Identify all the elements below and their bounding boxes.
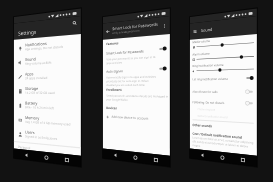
staticText: 14.2 GB of 32 GB used	[25, 91, 55, 95]
staticText: Sound	[25, 56, 37, 62]
staticText: Cast / Default notification sound	[192, 131, 242, 139]
staticText: Memory	[25, 115, 39, 121]
button[interactable]: Home	[128, 151, 142, 163]
button[interactable]: Media volume	[190, 35, 257, 49]
button[interactable]: Phone ringtone	[190, 106, 257, 113]
staticText: Enrollment	[106, 88, 122, 92]
staticText: Personal	[18, 144, 30, 150]
staticText: Media volume	[192, 39, 210, 44]
staticText: Saved passwords and device details are m…	[106, 94, 170, 103]
staticText: emily.jones@gmail.com	[112, 28, 140, 35]
button[interactable]: Home	[215, 151, 229, 163]
button[interactable]: Notifications	[14, 35, 81, 55]
button[interactable]: Back	[196, 149, 208, 160]
button[interactable]: Recents	[59, 153, 73, 165]
button[interactable]: Home	[39, 151, 53, 163]
staticText: App settings, Do not disturb	[25, 45, 63, 51]
staticText: Other sounds	[192, 122, 213, 127]
staticText: 24 apps installed	[25, 76, 48, 80]
button[interactable]: Memory	[14, 112, 81, 130]
staticText: Add new device to account	[111, 115, 148, 121]
staticText: Notifications	[25, 41, 47, 47]
button[interactable]: Users	[14, 126, 81, 146]
staticText: Ring/notification volume	[192, 63, 224, 68]
button[interactable]: Back	[105, 27, 111, 36]
staticText: Let ring/notification volume	[192, 77, 245, 81]
button[interactable]: Also vibrate for calls	[190, 88, 257, 95]
button[interactable]: Back	[20, 149, 32, 160]
staticText: Lorem ipsum dolor sit amet, consectetur …	[192, 135, 257, 154]
button[interactable]: Battery	[14, 97, 81, 114]
button[interactable]: Auto sign-in	[103, 67, 170, 87]
staticText: Smart Lock for Passwords	[106, 48, 144, 55]
staticText: Avg 1.4 GB of 4 GB memory used	[25, 120, 70, 126]
staticText: Auto sign-in	[106, 68, 124, 74]
button[interactable]: Recents	[235, 153, 249, 165]
staticText: Smart Lock for Passwords	[112, 21, 158, 31]
staticText: Automatically sign in to apps and websit…	[106, 74, 156, 87]
button[interactable]: Smart Lock for Passwords	[103, 47, 170, 65]
button[interactable]: Alarm volume	[190, 49, 257, 61]
button[interactable]: Search	[70, 18, 78, 26]
staticText: Signed in as Emily Jones	[25, 134, 57, 141]
button[interactable]: Add new device to account	[103, 113, 170, 123]
button[interactable]: Ring/notification volume	[190, 61, 257, 73]
button[interactable]: Menu	[192, 27, 198, 36]
button[interactable]: Back	[109, 149, 121, 160]
staticText: Default notification sound	[198, 114, 254, 121]
staticText: Following: Do not disturb	[192, 100, 245, 106]
staticText: Apps	[25, 71, 34, 76]
button[interactable]: Recents	[148, 153, 162, 165]
staticText: Battery	[25, 100, 38, 106]
button[interactable]: Storage	[14, 83, 81, 99]
button[interactable]: Let ring/notification volume	[190, 74, 257, 82]
staticText: Users	[25, 129, 35, 135]
staticText: Save your passwords so you can sign in t…	[106, 55, 156, 65]
button[interactable]: More options	[161, 23, 168, 29]
staticText: 84% - 10 h 24 min left	[25, 105, 55, 110]
button[interactable]: Following: Do not disturb	[190, 98, 257, 107]
staticText: Ring volume at 80%	[25, 61, 52, 66]
button[interactable]: Apps	[14, 67, 81, 83]
staticText: Storage	[25, 86, 39, 91]
staticText: Also vibrate for calls	[192, 90, 245, 94]
staticText: Alarm volume	[192, 52, 210, 57]
button[interactable]: Sound	[14, 51, 81, 69]
button[interactable]: Default notification sound	[190, 113, 257, 121]
staticText: Features	[106, 41, 118, 46]
staticText: Settings	[18, 28, 37, 36]
staticText: Devices	[106, 106, 118, 110]
staticText: Sound	[201, 27, 213, 34]
